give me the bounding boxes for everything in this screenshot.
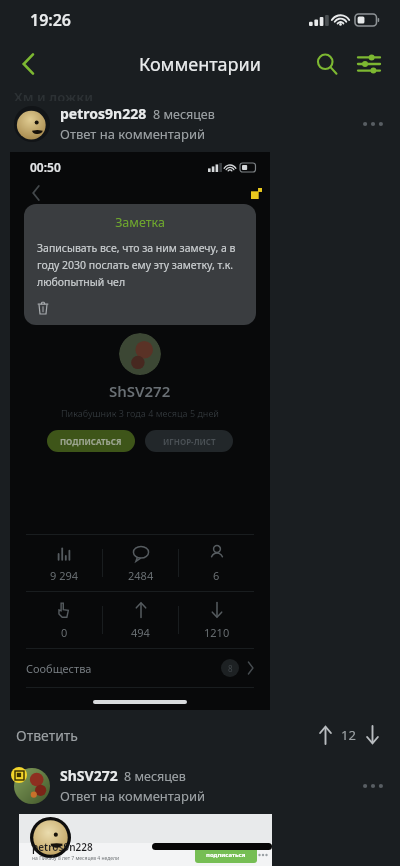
staticText: Записывать все, что за ним замечу, а в г… (37, 241, 243, 289)
button[interactable]: Ответить (14, 722, 80, 749)
button[interactable]: подписаться (195, 847, 257, 863)
button[interactable]: Поиск (306, 43, 348, 85)
staticText: petros9n228 (60, 104, 147, 123)
button[interactable]: 6 (179, 535, 254, 591)
staticText: 2484 (128, 568, 154, 583)
staticText: 0 (61, 625, 68, 640)
button[interactable]: Фильтр (348, 43, 390, 85)
staticText: 00:50 (30, 159, 61, 175)
button[interactable]: ИГНОР-ЛИСТ (145, 430, 233, 452)
staticText: 494 (131, 625, 150, 640)
staticText: 1210 (204, 625, 230, 640)
staticText: Сообщества (26, 661, 92, 676)
staticText: Заметка (37, 214, 243, 231)
button[interactable]: 0 (26, 592, 102, 648)
button[interactable]: 00:50 (10, 152, 270, 710)
staticText: Пикабушник 3 года 4 месяца 5 дней (61, 407, 219, 419)
staticText: Хм и ложки (14, 88, 94, 101)
button[interactable]: Ещё (356, 107, 390, 141)
staticText: Ответ на комментарий (60, 125, 206, 143)
staticText: ИГНОР-ЛИСТ (163, 436, 216, 447)
button[interactable]: ShSV272 (0, 763, 400, 808)
staticText: ShSV272 (109, 381, 171, 401)
staticText: 8 месяцев (124, 768, 186, 785)
button[interactable]: Заметка (24, 204, 256, 325)
button[interactable]: petros9n228 (0, 101, 400, 146)
staticText: ShSV272 (60, 766, 118, 785)
button[interactable]: подписаться (19, 814, 272, 866)
staticText: 9 294 (50, 568, 79, 583)
button[interactable]: Ещё (356, 769, 390, 803)
button[interactable]: Назад (6, 42, 50, 86)
staticText: 19:26 (30, 9, 72, 31)
button[interactable]: 1210 (179, 592, 254, 648)
button[interactable]: Сообщества (26, 649, 254, 687)
staticText: Комментарии (139, 52, 261, 77)
button[interactable]: Плюс (309, 719, 341, 751)
staticText: petros9n228 (32, 840, 93, 854)
staticText: 8 (228, 663, 233, 674)
staticText: 6 (213, 568, 220, 583)
button[interactable]: 2484 (103, 535, 178, 591)
staticText: Ответ на комментарий (60, 787, 206, 805)
staticText: Ответить (16, 726, 78, 745)
staticText: 8 месяцев (153, 106, 215, 123)
staticText: на Пикабу 8 лет 7 месяцев 4 недели (32, 855, 120, 862)
button[interactable]: 9 294 (26, 535, 102, 591)
button[interactable]: 494 (103, 592, 178, 648)
button[interactable]: ПОДПИСАТЬСЯ (47, 430, 135, 452)
button[interactable]: Минус (356, 719, 388, 751)
staticText: ПОДПИСАТЬСЯ (60, 436, 122, 447)
staticText: подписаться (206, 851, 246, 859)
staticText: 12 (341, 726, 356, 744)
